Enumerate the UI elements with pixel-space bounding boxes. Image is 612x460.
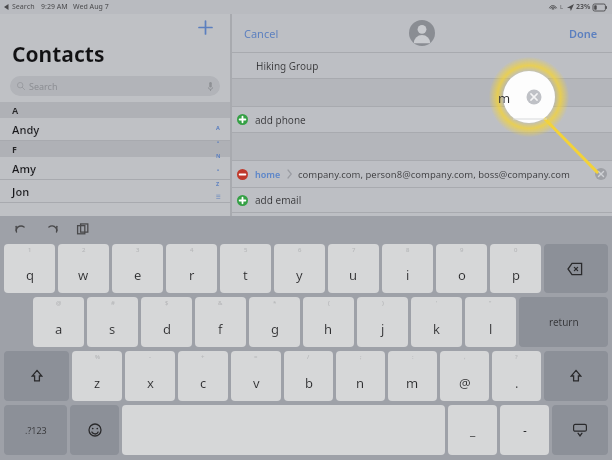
staticText: )	[382, 299, 384, 307]
button[interactable]: Amy	[0, 157, 230, 179]
staticText: A	[12, 104, 19, 116]
button[interactable]: Undo	[12, 220, 30, 238]
staticText: "	[489, 299, 492, 307]
button[interactable]: 2	[58, 244, 109, 293]
staticText: Andy	[12, 122, 40, 137]
button[interactable]: Backspace	[544, 244, 608, 293]
staticText: Search	[29, 80, 58, 92]
staticText: x	[147, 374, 154, 392]
button[interactable]: =	[231, 351, 281, 401]
button[interactable]: Emoji	[70, 405, 119, 455]
staticText: %	[95, 353, 100, 361]
button[interactable]: @	[33, 297, 84, 347]
button[interactable]: &	[195, 297, 246, 347]
button[interactable]: 0	[490, 244, 541, 293]
button[interactable]: Hiking Group	[232, 53, 612, 78]
button[interactable]: Shift	[544, 351, 608, 401]
staticText: 4	[190, 246, 194, 254]
staticText: ☰	[216, 194, 221, 200]
button[interactable]: Clear text	[595, 168, 607, 180]
button[interactable]: 6	[274, 244, 325, 293]
staticText: /	[307, 353, 310, 361]
button[interactable]: #	[87, 297, 138, 347]
staticText: return	[549, 315, 579, 329]
staticText: 7	[352, 246, 356, 254]
button[interactable]: add email	[232, 188, 612, 212]
staticText: h	[324, 320, 333, 338]
button[interactable]: 9	[436, 244, 487, 293]
staticText: •	[217, 166, 220, 173]
button[interactable]: /	[284, 351, 333, 401]
button[interactable]: 5	[220, 244, 271, 293]
button[interactable]: Shift	[4, 351, 69, 401]
button[interactable]: %	[72, 351, 122, 401]
button[interactable]: Search	[10, 76, 220, 96]
staticText: (	[328, 299, 330, 307]
staticText: Hiking Group	[256, 59, 319, 73]
staticText: =	[254, 353, 258, 361]
button[interactable]: Redo	[43, 220, 61, 238]
button[interactable]: return	[519, 297, 608, 347]
staticText: home	[255, 168, 281, 180]
button[interactable]: home	[232, 161, 612, 187]
staticText: 2	[82, 246, 86, 254]
staticText: z	[94, 374, 101, 392]
staticText: Wed Aug 7	[73, 2, 109, 12]
staticText: &	[218, 299, 223, 307]
staticText: *	[273, 299, 277, 307]
button[interactable]: Add contact	[194, 16, 216, 38]
button[interactable]: ,	[440, 351, 489, 401]
button[interactable]: Andy	[0, 118, 230, 140]
staticText: g	[271, 320, 279, 338]
staticText: e	[134, 266, 142, 284]
button[interactable]: Cancel	[240, 23, 283, 44]
button[interactable]: '	[411, 297, 462, 347]
button[interactable]: Hide keyboard	[552, 405, 608, 455]
staticText: @	[459, 374, 471, 392]
button[interactable]: add phone	[232, 107, 612, 132]
staticText: @	[56, 299, 62, 307]
staticText: ,	[464, 353, 466, 361]
staticText: v	[253, 374, 260, 392]
staticText: o	[458, 266, 466, 284]
button[interactable]: _	[448, 405, 497, 455]
button[interactable]: "	[465, 297, 516, 347]
button[interactable]: :	[388, 351, 437, 401]
button[interactable]: ?	[492, 351, 541, 401]
staticText: N	[216, 152, 221, 159]
staticText: k	[433, 320, 440, 338]
staticText: •	[217, 138, 220, 145]
button[interactable]: 8	[382, 244, 433, 293]
staticText: s	[109, 320, 116, 338]
staticText: l	[489, 320, 493, 338]
staticText: c	[200, 374, 207, 392]
button[interactable]: Paste	[74, 220, 92, 238]
button[interactable]: )	[357, 297, 408, 347]
button[interactable]: .?123	[4, 405, 67, 455]
button[interactable]: 4	[166, 244, 217, 293]
button[interactable]: $	[141, 297, 192, 347]
staticText: j	[381, 320, 385, 338]
staticText: add phone	[255, 113, 306, 127]
button[interactable]: *	[249, 297, 300, 347]
staticText: _	[470, 422, 476, 438]
staticText: r	[189, 266, 195, 284]
button[interactable]: Jon	[0, 180, 230, 202]
button[interactable]: 1	[4, 244, 55, 293]
staticText: u	[349, 266, 358, 284]
button[interactable]: Done	[565, 23, 602, 44]
button[interactable]: +	[178, 351, 228, 401]
button[interactable]: ;	[336, 351, 385, 401]
staticText: add email	[255, 193, 302, 207]
staticText: i	[406, 266, 410, 284]
staticText: A	[216, 124, 220, 131]
button[interactable]: (	[303, 297, 354, 347]
staticText: L	[560, 3, 564, 11]
button[interactable]: 7	[328, 244, 379, 293]
button[interactable]: -	[500, 405, 549, 455]
staticText: Contacts	[12, 40, 105, 69]
staticText: b	[305, 374, 313, 392]
button[interactable]: -	[125, 351, 175, 401]
button[interactable]: 3	[112, 244, 163, 293]
